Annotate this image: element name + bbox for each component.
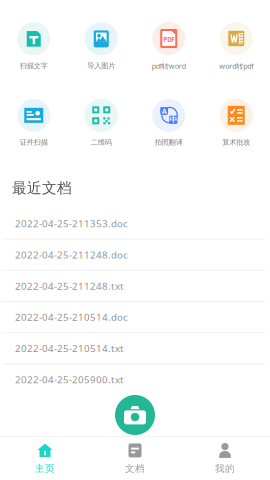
staticText: 2022-04-25-205900.txt [15,373,124,386]
staticText: 2022-04-25-211248.doc [15,248,128,261]
button[interactable]: 2022-04-25-211353.doc [0,208,270,240]
button[interactable]: 2022-04-25-205900.txt [0,364,270,396]
button[interactable]: 二维码 [67,99,135,147]
button[interactable]: 2022-04-25-211248.doc [0,240,270,271]
staticText: 最近文档 [12,179,72,197]
button[interactable]: 2022-04-25-210514.doc [0,302,270,333]
staticText: 算术批改 [222,138,250,147]
staticText: 证件扫描 [20,138,48,147]
button[interactable]: PDF [135,22,202,71]
button[interactable]: 扫描文字 [0,22,67,70]
staticText: 2022-04-25-210514.doc [15,310,128,324]
button[interactable]: 文档 [90,437,180,480]
button[interactable]: Scan document [115,395,155,435]
button[interactable]: 2022-04-25-211248.txt [0,271,270,302]
button[interactable]: 主页 [0,437,90,480]
staticText: PDF [163,35,174,44]
staticText: 2022-04-25-211353.doc [15,217,128,230]
staticText: 我的 [215,462,235,475]
staticText: 文档 [125,462,145,475]
staticText: 中 [170,115,177,124]
staticText: 扫描文字 [20,61,48,70]
button[interactable]: 我的 [180,437,270,480]
staticText: 导入图片 [87,61,115,70]
staticText: 拍照翻译 [155,138,183,147]
staticText: 二维码 [91,138,112,147]
button[interactable]: 算术批改 [202,99,270,147]
button[interactable]: 2022-04-25-210514.txt [0,333,270,364]
staticText: 主页 [35,462,55,475]
staticText: 2022-04-25-211248.txt [15,279,124,293]
button[interactable]: word转pdf [202,22,270,71]
staticText: A [162,106,167,116]
button[interactable]: 导入图片 [67,22,135,70]
staticText: word转pdf [219,61,253,71]
button[interactable]: A [135,99,202,147]
button[interactable]: 证件扫描 [0,99,67,147]
staticText: 2022-04-25-210514.txt [15,342,124,355]
staticText: pdf转word [152,61,186,71]
